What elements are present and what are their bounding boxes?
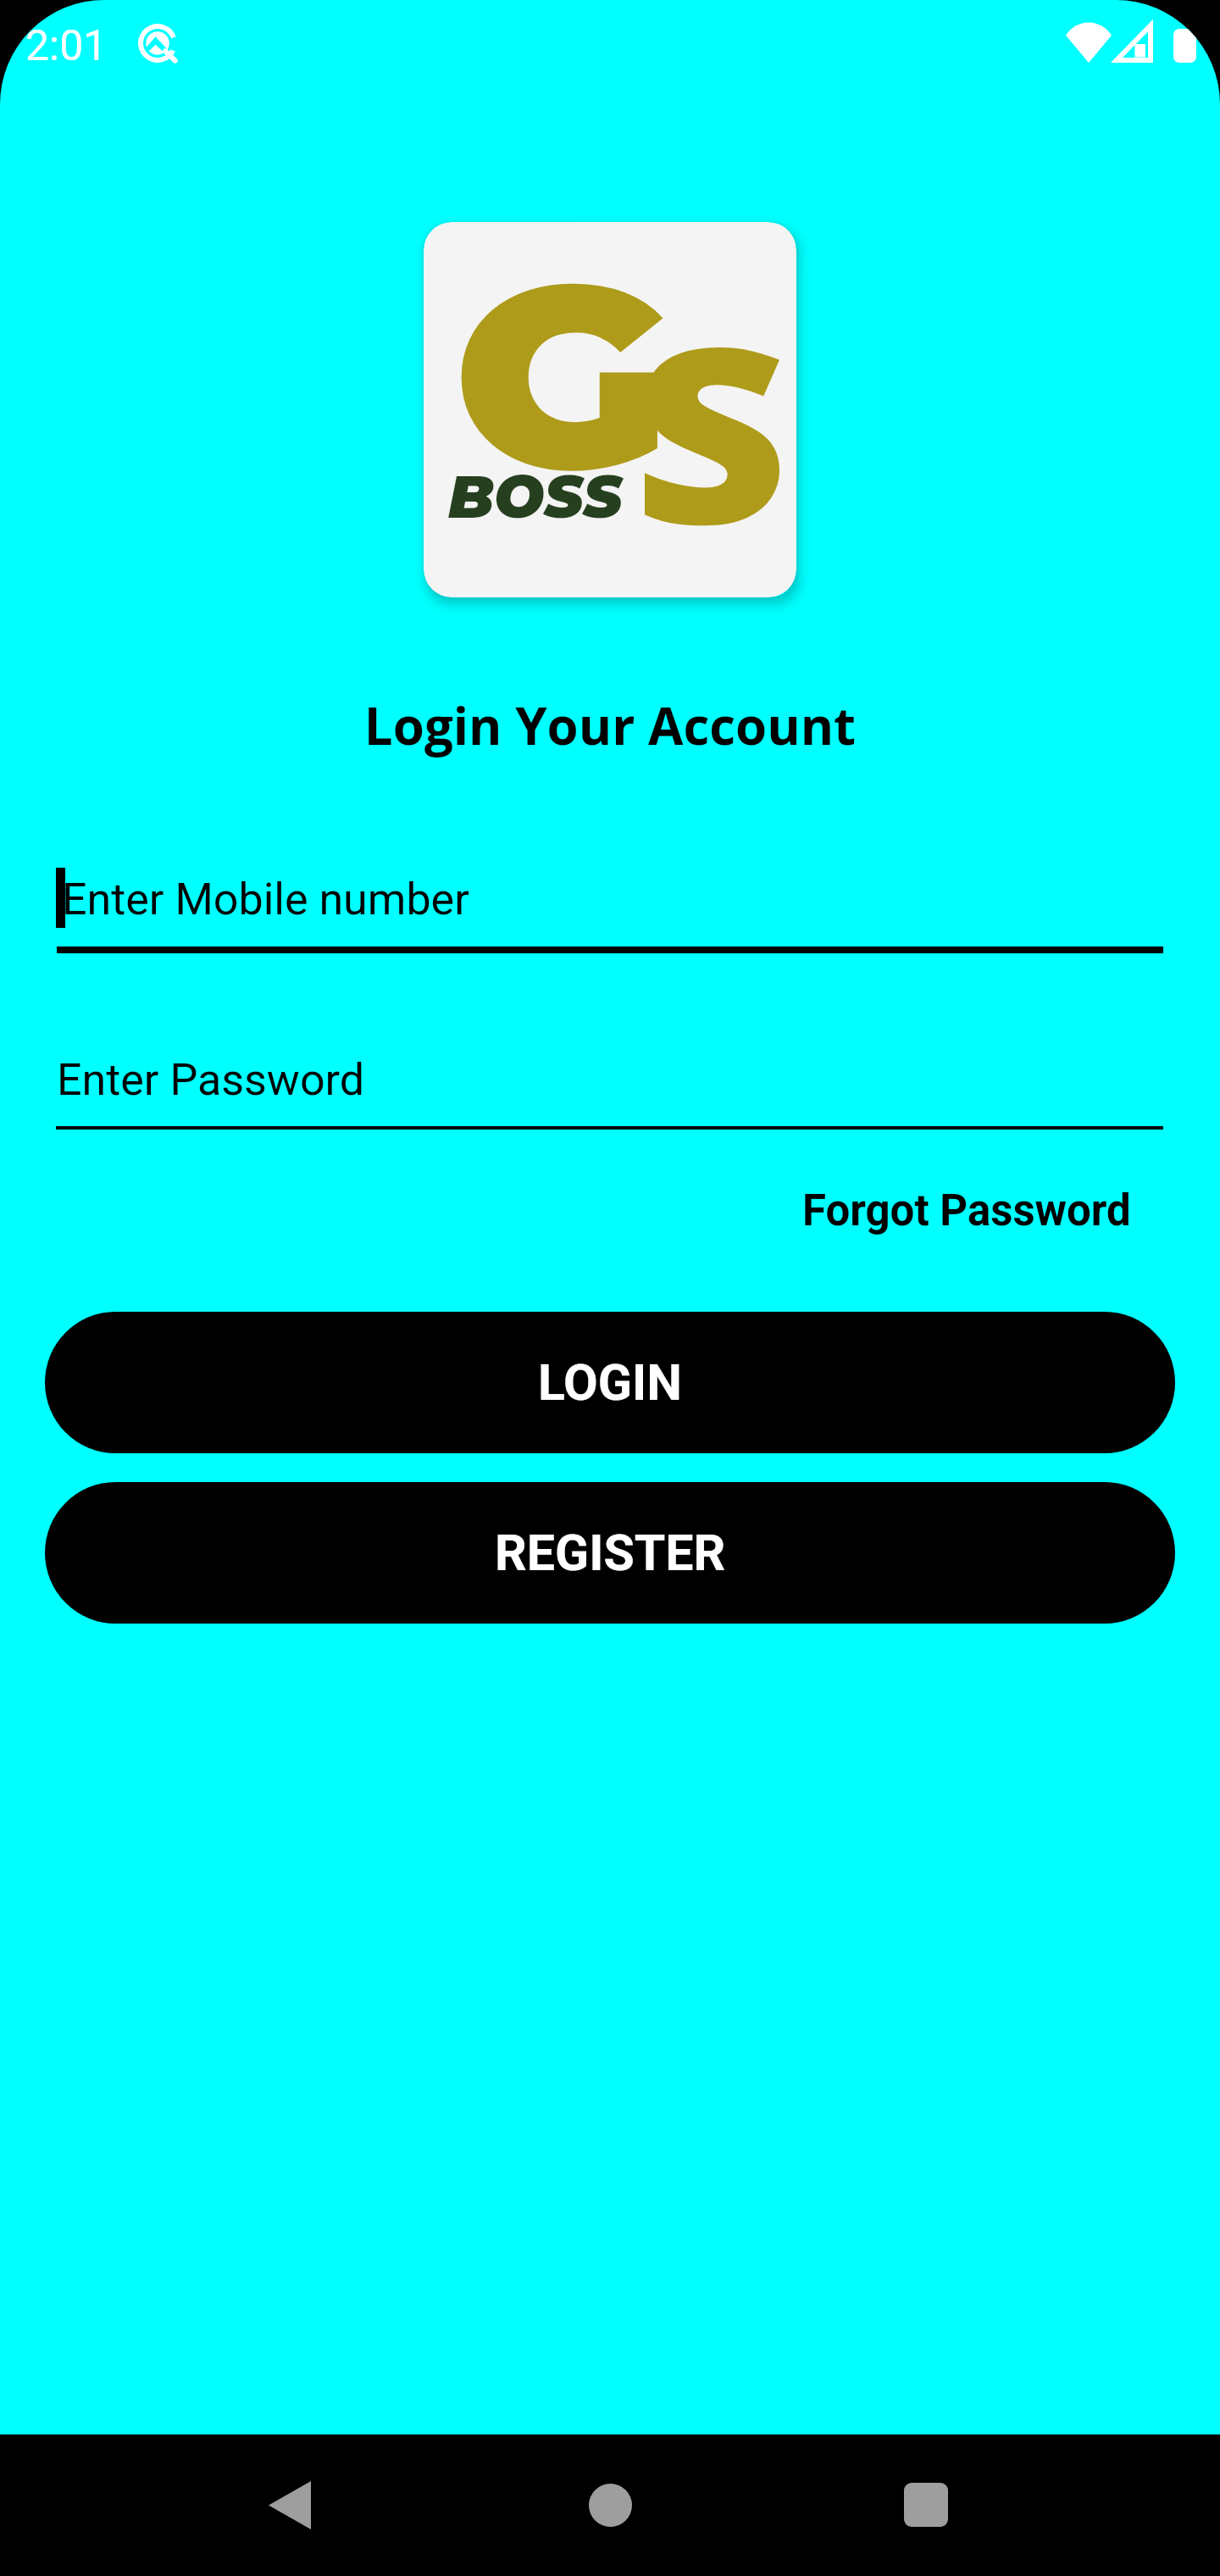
staticText: Forgot Password	[802, 1185, 1131, 1236]
staticText: REGISTER	[495, 1524, 726, 1582]
button[interactable]: Home	[559, 2454, 661, 2556]
button[interactable]: REGISTER	[45, 1482, 1175, 1624]
staticText: S	[633, 264, 789, 595]
staticText: 2:01	[25, 21, 108, 71]
staticText: G	[453, 222, 670, 531]
button[interactable]: Back	[239, 2454, 341, 2556]
staticText: LOGIN	[538, 1353, 682, 1412]
staticText: Enter Password	[57, 1054, 365, 1106]
button[interactable]: Forgot Password	[802, 1185, 1131, 1236]
button[interactable]: LOGIN	[45, 1312, 1175, 1453]
staticText: Login Your Account	[0, 691, 1220, 760]
button[interactable]: Recent apps	[875, 2454, 977, 2556]
staticText: Enter Mobile number	[62, 874, 469, 925]
staticText: BOSS	[448, 460, 623, 532]
